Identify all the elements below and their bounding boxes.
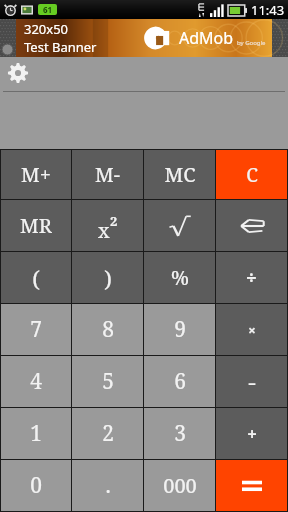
- staticText: 9: [174, 315, 186, 344]
- button[interactable]: 8: [72, 304, 143, 355]
- button[interactable]: M+: [1, 150, 71, 199]
- button[interactable]: [216, 460, 287, 511]
- button[interactable]: ÷: [216, 252, 287, 303]
- staticText: MC: [164, 161, 196, 188]
- button[interactable]: Settings: [7, 62, 29, 84]
- staticText: 000: [163, 472, 197, 499]
- staticText: M-: [95, 161, 120, 188]
- staticText: 5: [102, 367, 114, 396]
- button[interactable]: ×: [216, 304, 287, 355]
- button[interactable]: .: [72, 460, 143, 511]
- staticText: 7: [30, 315, 42, 344]
- staticText: (: [32, 263, 40, 293]
- button[interactable]: [216, 200, 287, 251]
- button[interactable]: 4: [1, 356, 71, 407]
- button[interactable]: 1: [1, 408, 71, 459]
- button[interactable]: 000: [144, 460, 215, 511]
- button[interactable]: 5: [72, 356, 143, 407]
- button[interactable]: %: [144, 252, 215, 303]
- staticText: 4: [30, 367, 42, 396]
- button[interactable]: [144, 200, 215, 251]
- button[interactable]: M-: [72, 150, 143, 199]
- button[interactable]: 3: [144, 408, 215, 459]
- staticText: 2: [102, 419, 114, 448]
- staticText: Test Banner: [24, 38, 97, 56]
- staticText: 0: [30, 471, 42, 500]
- staticText: ): [104, 263, 112, 293]
- staticText: 3: [174, 419, 186, 448]
- button[interactable]: MR: [1, 200, 71, 251]
- staticText: ×: [248, 321, 256, 339]
- staticText: %: [171, 264, 189, 291]
- button[interactable]: 9: [144, 304, 215, 355]
- staticText: 1: [30, 419, 42, 448]
- staticText: ÷: [246, 265, 257, 290]
- staticText: 6: [174, 367, 186, 396]
- button[interactable]: ): [72, 252, 143, 303]
- button[interactable]: 7: [1, 304, 71, 355]
- staticText: C: [246, 162, 258, 188]
- staticText: +: [247, 423, 257, 445]
- staticText: 8: [102, 315, 114, 344]
- staticText: 11:43: [251, 1, 285, 19]
- staticText: AdMob: [179, 27, 234, 49]
- staticText: –: [248, 372, 256, 392]
- button[interactable]: 6: [144, 356, 215, 407]
- staticText: 2: [110, 212, 118, 230]
- staticText: MR: [20, 212, 52, 239]
- button[interactable]: –: [216, 356, 287, 407]
- button[interactable]: 0: [1, 460, 71, 511]
- button[interactable]: C: [216, 150, 287, 199]
- button[interactable]: x: [72, 200, 143, 251]
- staticText: .: [105, 471, 111, 500]
- staticText: M+: [21, 161, 51, 188]
- staticText: 61: [43, 4, 53, 15]
- button[interactable]: (: [1, 252, 71, 303]
- button[interactable]: +: [216, 408, 287, 459]
- staticText: x: [98, 217, 110, 244]
- staticText: 320x50: [24, 20, 69, 38]
- button[interactable]: 2: [72, 408, 143, 459]
- staticText: by Google: [237, 39, 266, 47]
- button[interactable]: MC: [144, 150, 215, 199]
